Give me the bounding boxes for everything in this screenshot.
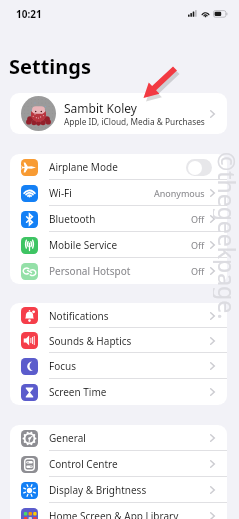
button[interactable]: Notifications	[10, 303, 227, 328]
staticText: Settings	[9, 53, 91, 80]
button[interactable]: Mobile Service	[10, 232, 227, 258]
staticText: 10:21	[16, 7, 42, 21]
button[interactable]: Home Screen & App Library	[10, 503, 227, 519]
staticText: Bluetooth	[49, 212, 96, 226]
staticText: Apple ID, iCloud, Media & Purchases	[64, 116, 205, 127]
button[interactable]: Display & Brightness	[10, 477, 227, 503]
button[interactable]: Screen Time	[10, 379, 227, 405]
staticText: Sambit Koley	[64, 100, 137, 116]
button[interactable]: Airplane Mode	[10, 154, 227, 180]
button[interactable]: Airplane Mode toggle	[186, 159, 212, 176]
staticText: ©thegeekpage.com	[213, 152, 239, 322]
button[interactable]: Sounds & Haptics	[10, 328, 227, 353]
staticText: Anonymous	[154, 187, 205, 199]
button[interactable]: Bluetooth	[10, 206, 227, 232]
button[interactable]: Control Centre	[10, 451, 227, 477]
button[interactable]: Focus	[10, 353, 227, 379]
button[interactable]: General	[10, 425, 227, 451]
staticText: Wi-Fi	[49, 186, 72, 200]
staticText: Screen Time	[49, 385, 107, 399]
staticText: Off	[191, 213, 205, 225]
button[interactable]: Personal Hotspot	[10, 258, 227, 284]
staticText: Display & Brightness	[49, 483, 147, 497]
button[interactable]: Wi-Fi	[10, 180, 227, 206]
staticText: Airplane Mode	[49, 160, 118, 174]
button[interactable]: Sambit Koley	[10, 93, 227, 134]
staticText: Focus	[49, 359, 77, 373]
staticText: Personal Hotspot	[49, 264, 131, 278]
staticText: General	[49, 431, 86, 445]
staticText: Off	[191, 239, 205, 251]
staticText: Off	[191, 265, 205, 277]
staticText: Control Centre	[49, 457, 118, 471]
staticText: Notifications	[49, 309, 109, 323]
staticText: Sounds & Haptics	[49, 334, 132, 348]
staticText: Mobile Service	[49, 238, 118, 252]
staticText: Home Screen & App Library	[49, 509, 179, 519]
